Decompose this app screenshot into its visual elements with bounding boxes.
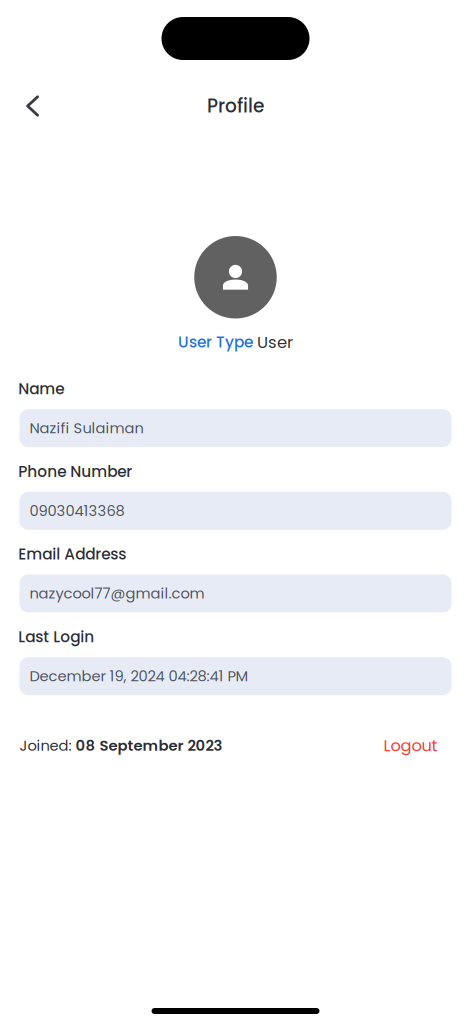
staticText: Last Login — [18, 626, 94, 648]
staticText: nazycool77@gmail.com — [29, 583, 204, 604]
staticText: Logout — [383, 734, 437, 757]
staticText: 09030413368 — [29, 500, 124, 521]
button[interactable]: Back — [13, 84, 53, 128]
staticText: Email Address — [18, 543, 126, 565]
button[interactable]: Logout — [383, 734, 452, 757]
staticText: December 19, 2024 04:28:41 PM — [29, 666, 248, 686]
staticText: Name — [18, 378, 64, 400]
staticText: Joined: — [19, 735, 71, 756]
staticText: 08 September 2023 — [75, 735, 222, 756]
staticText: Profile — [207, 93, 264, 119]
staticText: Phone Number — [18, 461, 132, 482]
staticText: Nazifi Sulaiman — [29, 418, 143, 438]
staticText: User Type — [178, 331, 253, 353]
staticText: User — [257, 331, 293, 354]
